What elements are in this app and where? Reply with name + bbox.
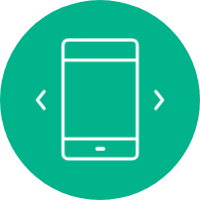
button[interactable]: Smartphone [57, 34, 143, 165]
button[interactable]: Previous [36, 88, 47, 112]
button[interactable]: Next [153, 88, 164, 112]
